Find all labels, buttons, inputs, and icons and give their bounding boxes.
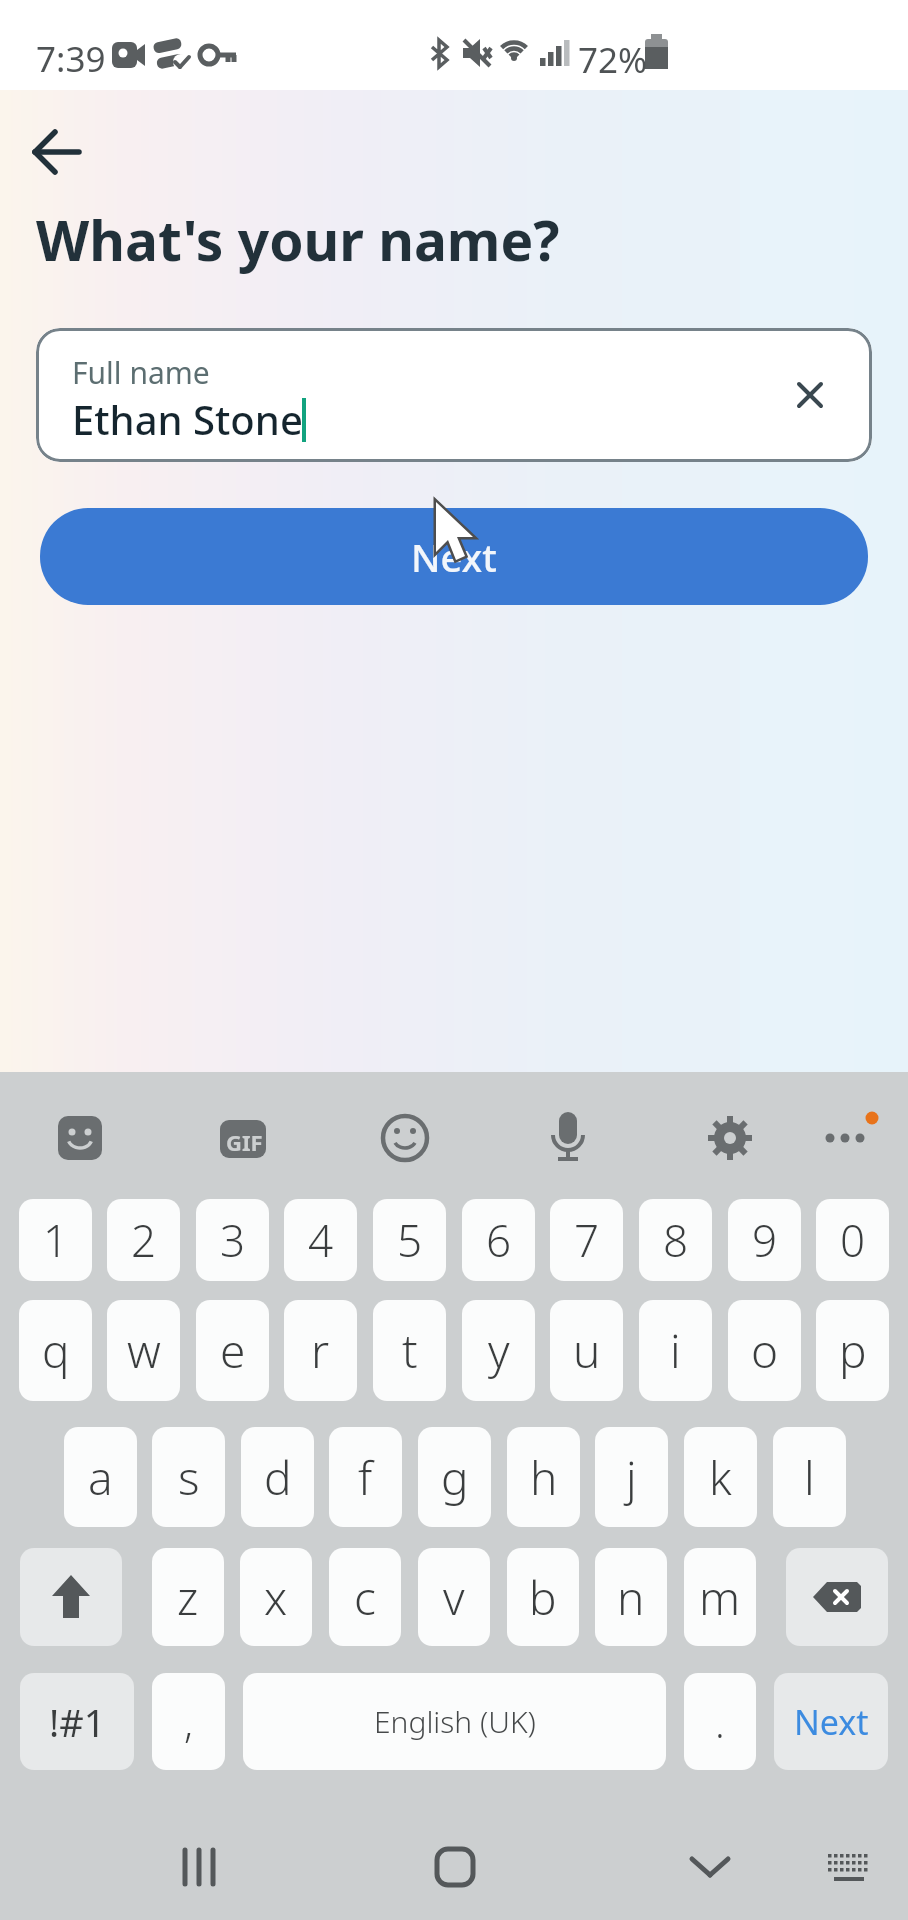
button[interactable]: i [639, 1300, 712, 1401]
staticText: GIF [226, 1127, 263, 1157]
button[interactable]: q [19, 1300, 92, 1401]
staticText: g [441, 1446, 469, 1509]
staticText: 9 [752, 1210, 778, 1270]
button[interactable]: 3 [196, 1199, 269, 1281]
staticText: p [839, 1319, 867, 1382]
staticText: 1 [43, 1210, 69, 1270]
button[interactable] [40, 1098, 120, 1178]
staticText: 7:39 [36, 35, 106, 83]
staticText: k [709, 1446, 732, 1509]
button[interactable]: English (UK) [243, 1673, 666, 1770]
button[interactable] [808, 1098, 888, 1178]
button[interactable]: o [728, 1300, 801, 1401]
staticText: . [715, 1695, 725, 1749]
button[interactable] [144, 1812, 254, 1920]
button[interactable]: w [107, 1300, 180, 1401]
staticText: 6 [486, 1210, 512, 1270]
button[interactable]: . [684, 1673, 756, 1770]
button[interactable]: b [507, 1548, 579, 1646]
button[interactable]: g [418, 1427, 491, 1527]
staticText: Next [411, 531, 497, 583]
button[interactable]: 0 [816, 1199, 889, 1281]
staticText: Next [794, 1699, 869, 1745]
staticText: 72% [578, 36, 648, 84]
button[interactable]: h [507, 1427, 580, 1527]
staticText: 5 [397, 1210, 423, 1270]
staticText: s [178, 1446, 200, 1509]
button[interactable]: d [241, 1427, 314, 1527]
staticText: h [530, 1446, 558, 1509]
staticText: j [626, 1446, 637, 1509]
staticText: f [358, 1446, 373, 1509]
button[interactable] [690, 1098, 770, 1178]
button[interactable]: c [329, 1548, 401, 1646]
button[interactable]: 9 [728, 1199, 801, 1281]
staticText: m [699, 1566, 741, 1629]
button[interactable]: x [240, 1548, 312, 1646]
staticText: e [220, 1319, 246, 1382]
button[interactable]: a [64, 1427, 137, 1527]
button[interactable]: 2 [107, 1199, 180, 1281]
button[interactable]: s [152, 1427, 225, 1527]
button[interactable]: k [684, 1427, 757, 1527]
button[interactable]: 4 [284, 1199, 357, 1281]
staticText: !#1 [49, 1696, 106, 1748]
staticText: b [529, 1566, 557, 1629]
staticText: c [354, 1566, 376, 1629]
staticText: 2 [131, 1210, 157, 1270]
staticText: Ethan Stone [72, 392, 303, 446]
staticText: y [488, 1319, 510, 1382]
button[interactable]: Next [40, 508, 868, 605]
button[interactable]: n [595, 1548, 667, 1646]
button[interactable]: z [152, 1548, 224, 1646]
button[interactable]: 1 [19, 1199, 92, 1281]
button[interactable]: , [152, 1673, 225, 1770]
staticText: d [264, 1446, 292, 1509]
button[interactable]: Full name [36, 328, 872, 462]
button[interactable] [203, 1098, 283, 1178]
staticText: u [573, 1319, 601, 1382]
button[interactable]: r [284, 1300, 357, 1401]
button[interactable]: e [196, 1300, 269, 1401]
staticText: q [42, 1319, 70, 1382]
staticText: 3 [220, 1210, 246, 1270]
button[interactable] [786, 1548, 888, 1646]
button[interactable]: Next [774, 1673, 888, 1770]
button[interactable]: u [550, 1300, 623, 1401]
button[interactable]: j [595, 1427, 668, 1527]
staticText: 8 [663, 1210, 689, 1270]
button[interactable] [365, 1098, 445, 1178]
staticText: o [751, 1319, 779, 1382]
staticText: w [127, 1319, 161, 1382]
button[interactable]: f [329, 1427, 402, 1527]
button[interactable] [528, 1098, 608, 1178]
button[interactable]: v [418, 1548, 490, 1646]
button[interactable] [776, 361, 844, 429]
staticText: 0 [840, 1210, 866, 1270]
staticText: x [264, 1566, 288, 1629]
button[interactable]: 7 [550, 1199, 623, 1281]
button[interactable]: 8 [639, 1199, 712, 1281]
staticText: Full name [72, 352, 210, 393]
staticText: English (UK) [374, 1701, 536, 1742]
staticText: 4 [308, 1210, 334, 1270]
staticText: a [88, 1446, 113, 1509]
staticText: z [177, 1566, 199, 1629]
button[interactable]: y [462, 1300, 535, 1401]
button[interactable]: 6 [462, 1199, 535, 1281]
button[interactable] [791, 1812, 901, 1920]
button[interactable]: t [373, 1300, 446, 1401]
staticText: n [617, 1566, 645, 1629]
button[interactable] [655, 1812, 765, 1920]
button[interactable]: m [684, 1548, 756, 1646]
button[interactable] [22, 114, 92, 184]
button[interactable] [20, 1548, 122, 1646]
button[interactable] [400, 1812, 510, 1920]
button[interactable]: !#1 [20, 1673, 134, 1770]
button[interactable]: p [816, 1300, 889, 1401]
staticText: t [402, 1319, 418, 1382]
button[interactable]: 5 [373, 1199, 446, 1281]
button[interactable]: l [773, 1427, 846, 1527]
staticText: What's your name? [36, 202, 560, 277]
staticText: , [184, 1695, 193, 1749]
